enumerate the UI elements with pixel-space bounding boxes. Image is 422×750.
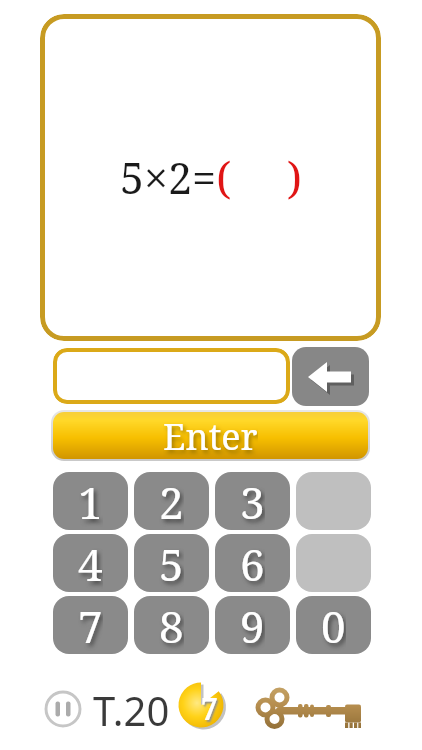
staticText: 3 — [240, 472, 265, 530]
button[interactable] — [296, 472, 371, 530]
button[interactable]: 5 — [134, 534, 209, 592]
button[interactable]: 2 — [134, 472, 209, 530]
button[interactable]: 1 — [53, 472, 128, 530]
staticText: 5 — [159, 534, 184, 592]
staticText: 5×2=( ) — [120, 148, 302, 207]
staticText: 0 — [321, 596, 346, 654]
button[interactable]: 7 — [177, 681, 229, 733]
button[interactable]: 9 — [215, 596, 290, 654]
button[interactable]: 0 — [296, 596, 371, 654]
button[interactable]: 3 — [215, 472, 290, 530]
staticText: 9 — [240, 596, 265, 654]
button[interactable]: 8 — [134, 596, 209, 654]
button[interactable]: 7 — [53, 596, 128, 654]
button[interactable]: 4 — [53, 534, 128, 592]
staticText: Enter — [163, 412, 258, 459]
button[interactable] — [296, 534, 371, 592]
staticText: 7 — [201, 688, 218, 729]
button[interactable]: 6 — [215, 534, 290, 592]
button[interactable] — [44, 690, 82, 728]
button[interactable]: Enter — [51, 410, 370, 461]
button[interactable] — [292, 347, 369, 406]
staticText: 7 — [78, 596, 103, 654]
staticText: 4 — [78, 534, 103, 592]
staticText: 1 — [78, 472, 103, 530]
staticText: 2 — [159, 472, 184, 530]
button[interactable] — [53, 348, 290, 404]
staticText: 8 — [159, 596, 184, 654]
staticText: T.20 — [93, 683, 170, 737]
staticText: 6 — [240, 534, 265, 592]
